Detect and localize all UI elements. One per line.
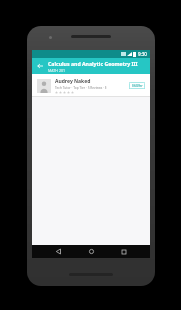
- staticText: Tech Tutor · Top Tier · 5 Reviews · $: [55, 86, 107, 90]
- button[interactable]: Home: [85, 245, 98, 258]
- staticText: 9:30: [138, 51, 147, 57]
- button[interactable]: Recent apps: [117, 245, 130, 258]
- button[interactable]: Back: [35, 61, 45, 71]
- button[interactable]: $60/hr: [129, 82, 145, 89]
- button[interactable]: Back: [52, 245, 65, 258]
- staticText: Audrey Naked: [55, 78, 91, 85]
- staticText: MATH 201: [48, 68, 66, 73]
- staticText: Calculus and Analytic Geometry III: [48, 60, 138, 67]
- staticText: $60/hr: [132, 83, 143, 88]
- button[interactable]: Audrey Naked: [32, 74, 150, 97]
